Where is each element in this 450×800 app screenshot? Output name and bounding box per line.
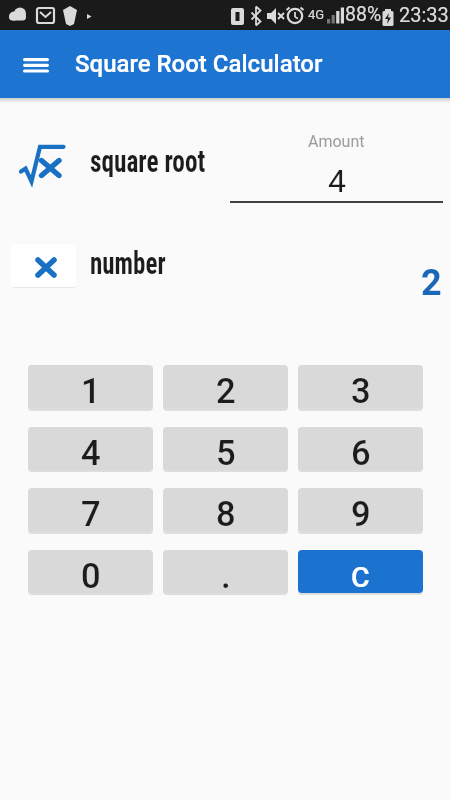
staticText: 2 [216,371,236,408]
staticText: 23:33 [399,3,449,26]
button[interactable]: 8 [163,488,288,531]
staticText: C [351,561,370,593]
button[interactable] [15,48,57,82]
button[interactable]: 1 [28,365,153,408]
staticText: number [90,245,166,275]
staticText: 0 [81,556,101,593]
button[interactable]: 4 [28,427,153,470]
staticText: 2 [421,262,442,304]
staticText: Amount [308,132,365,151]
button[interactable]: 2 [163,365,288,408]
staticText: 5 [216,433,236,470]
staticText: 7 [81,494,101,531]
button[interactable]: 9 [298,488,423,531]
staticText: 3 [351,371,371,408]
staticText: Square Root Calculator [75,50,323,78]
staticText: 4G [308,7,325,22]
staticText: 9 [351,494,371,531]
staticText: 88% [345,3,382,26]
button[interactable]: 0 [28,550,153,593]
staticText: square root [90,143,206,177]
staticText: 8 [216,494,236,531]
button[interactable]: 4 [230,158,443,204]
staticText: 6 [351,433,371,470]
button[interactable]: . [163,550,288,593]
button[interactable]: square root [90,143,232,177]
button[interactable]: 5 [163,427,288,470]
button[interactable]: C [298,550,423,593]
staticText: 1 [81,371,101,408]
staticText: 4 [81,433,101,470]
button[interactable]: 6 [298,427,423,470]
staticText: 4 [328,162,346,200]
staticText: . [221,556,231,593]
button[interactable] [11,244,76,287]
button[interactable]: 7 [28,488,153,531]
button[interactable]: 3 [298,365,423,408]
button[interactable]: number [90,245,184,275]
